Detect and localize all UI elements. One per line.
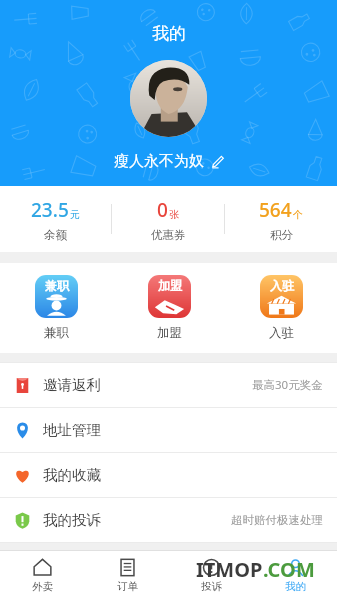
staticText: 我的收藏 xyxy=(43,466,101,484)
staticText: 兼职 xyxy=(44,325,69,341)
staticText: 0 xyxy=(157,197,168,223)
staticText: 加盟 xyxy=(157,325,182,341)
staticText: 最高30元奖金 xyxy=(252,377,323,393)
button[interactable]: Complaints xyxy=(169,551,253,600)
staticText: 我的 xyxy=(152,23,186,44)
button[interactable]: Profile xyxy=(253,551,337,600)
staticText: 投诉 xyxy=(201,580,222,593)
staticText: 优惠券 xyxy=(151,228,186,242)
staticText: 个 xyxy=(293,208,303,221)
button[interactable]: Orders xyxy=(85,551,169,600)
button[interactable]: 我的收藏 xyxy=(0,453,337,497)
staticText: 超时赔付极速处理 xyxy=(231,513,323,527)
staticText: 兼职 xyxy=(45,278,69,293)
staticText: 订单 xyxy=(117,580,138,593)
other: Edit nickname xyxy=(211,155,224,168)
staticText: 564 xyxy=(259,197,292,223)
button[interactable]: 兼职 xyxy=(0,263,113,353)
staticText: .COM xyxy=(263,556,315,583)
staticText: 邀请返利 xyxy=(43,376,101,394)
staticText: 入驻 xyxy=(269,325,294,341)
button[interactable]: 邀请返利 xyxy=(0,363,337,407)
staticText: ITMOP xyxy=(196,556,263,583)
staticText: 我的投诉 xyxy=(43,511,101,529)
staticText: 地址管理 xyxy=(43,421,101,439)
button[interactable]: 23.5 xyxy=(0,186,111,252)
button[interactable]: 瘦人永不为奴 xyxy=(110,148,228,175)
button[interactable]: 加盟 xyxy=(113,263,225,353)
button[interactable]: 0 xyxy=(112,186,224,252)
staticText: 余额 xyxy=(44,228,67,242)
button[interactable]: Profile photo xyxy=(130,60,207,137)
staticText: 外卖 xyxy=(32,580,53,593)
staticText: 入驻 xyxy=(270,278,294,293)
button[interactable]: 入驻 xyxy=(225,263,337,353)
button[interactable]: 我的投诉 xyxy=(0,498,337,542)
staticText: 23.5 xyxy=(31,197,69,223)
button[interactable]: 地址管理 xyxy=(0,408,337,452)
staticText: 瘦人永不为奴 xyxy=(114,152,204,171)
staticText: 加盟 xyxy=(158,278,182,293)
staticText: 张 xyxy=(169,208,179,221)
staticText: 积分 xyxy=(270,228,293,242)
staticText: 元 xyxy=(70,208,80,221)
staticText: 我的 xyxy=(285,580,306,593)
button[interactable]: Takeout xyxy=(0,551,85,600)
button[interactable]: 564 xyxy=(225,186,337,252)
